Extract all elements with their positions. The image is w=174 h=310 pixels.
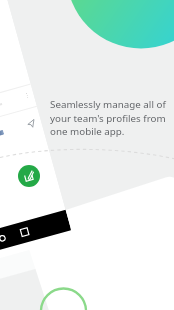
staticText: Seamlessly manage all of your team's pro…: [50, 98, 166, 137]
button[interactable]: Compose: [18, 165, 40, 187]
